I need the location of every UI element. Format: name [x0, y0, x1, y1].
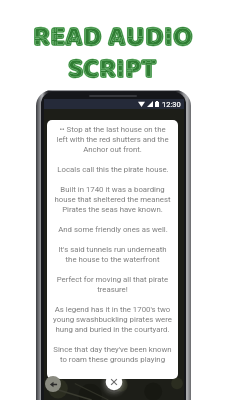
- staticText: 12:30: [162, 100, 181, 109]
- staticText: And some friendly ones as well.: [58, 225, 168, 234]
- staticText: As legend has it in the 1700's two young…: [53, 305, 172, 334]
- staticText: Built in 1740 it was a boarding house th…: [53, 185, 172, 214]
- button[interactable]: Close: [100, 368, 128, 396]
- staticText: It's said tunnels run underneath the hou…: [53, 245, 172, 264]
- staticText: •• Stop at the last house on the left wi…: [53, 125, 172, 154]
- staticText: Since that day they've been known to roa…: [53, 345, 172, 364]
- button[interactable]: Back: [45, 376, 61, 392]
- staticText: Locals call this the pirate house.: [57, 165, 169, 174]
- staticText: Perfect for moving all that pirate treas…: [53, 275, 172, 294]
